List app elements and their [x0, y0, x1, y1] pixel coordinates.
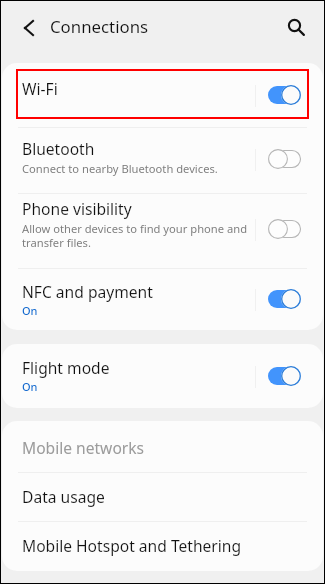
staticText: On [22, 379, 38, 394]
staticText: Bluetooth [22, 138, 95, 159]
button[interactable]: Data usage [2, 473, 323, 521]
button[interactable]: Switch on [267, 288, 302, 310]
staticText: Data usage [22, 486, 105, 507]
staticText: Connections [50, 15, 149, 38]
staticText: Connect to nearby Bluetooth devices. [22, 161, 218, 176]
button[interactable]: Search [274, 5, 318, 49]
staticText: Allow other devices to find your phone a… [22, 221, 257, 250]
staticText: NFC and payment [22, 281, 153, 302]
staticText: Mobile Hotspot and Tethering [22, 535, 242, 556]
staticText: Wi-Fi [22, 78, 58, 99]
button[interactable]: Flight mode [2, 344, 323, 408]
button[interactable]: Switch off [267, 218, 302, 240]
button[interactable]: Bluetooth [2, 128, 323, 193]
button[interactable]: Back [7, 6, 51, 50]
button[interactable]: Switch off [267, 148, 302, 170]
button[interactable]: Wi-Fi [2, 63, 323, 127]
button[interactable]: Phone visibility [2, 194, 323, 268]
staticText: Phone visibility [22, 198, 132, 219]
staticText: Mobile networks [22, 437, 145, 458]
button[interactable]: NFC and payment [2, 269, 323, 330]
button[interactable]: Mobile Hotspot and Tethering [2, 522, 323, 571]
button[interactable]: Mobile networks [2, 421, 323, 472]
staticText: On [22, 303, 38, 318]
staticText: Flight mode [22, 357, 110, 378]
button[interactable]: Switch on [267, 365, 302, 387]
button[interactable]: Switch on [267, 84, 302, 106]
